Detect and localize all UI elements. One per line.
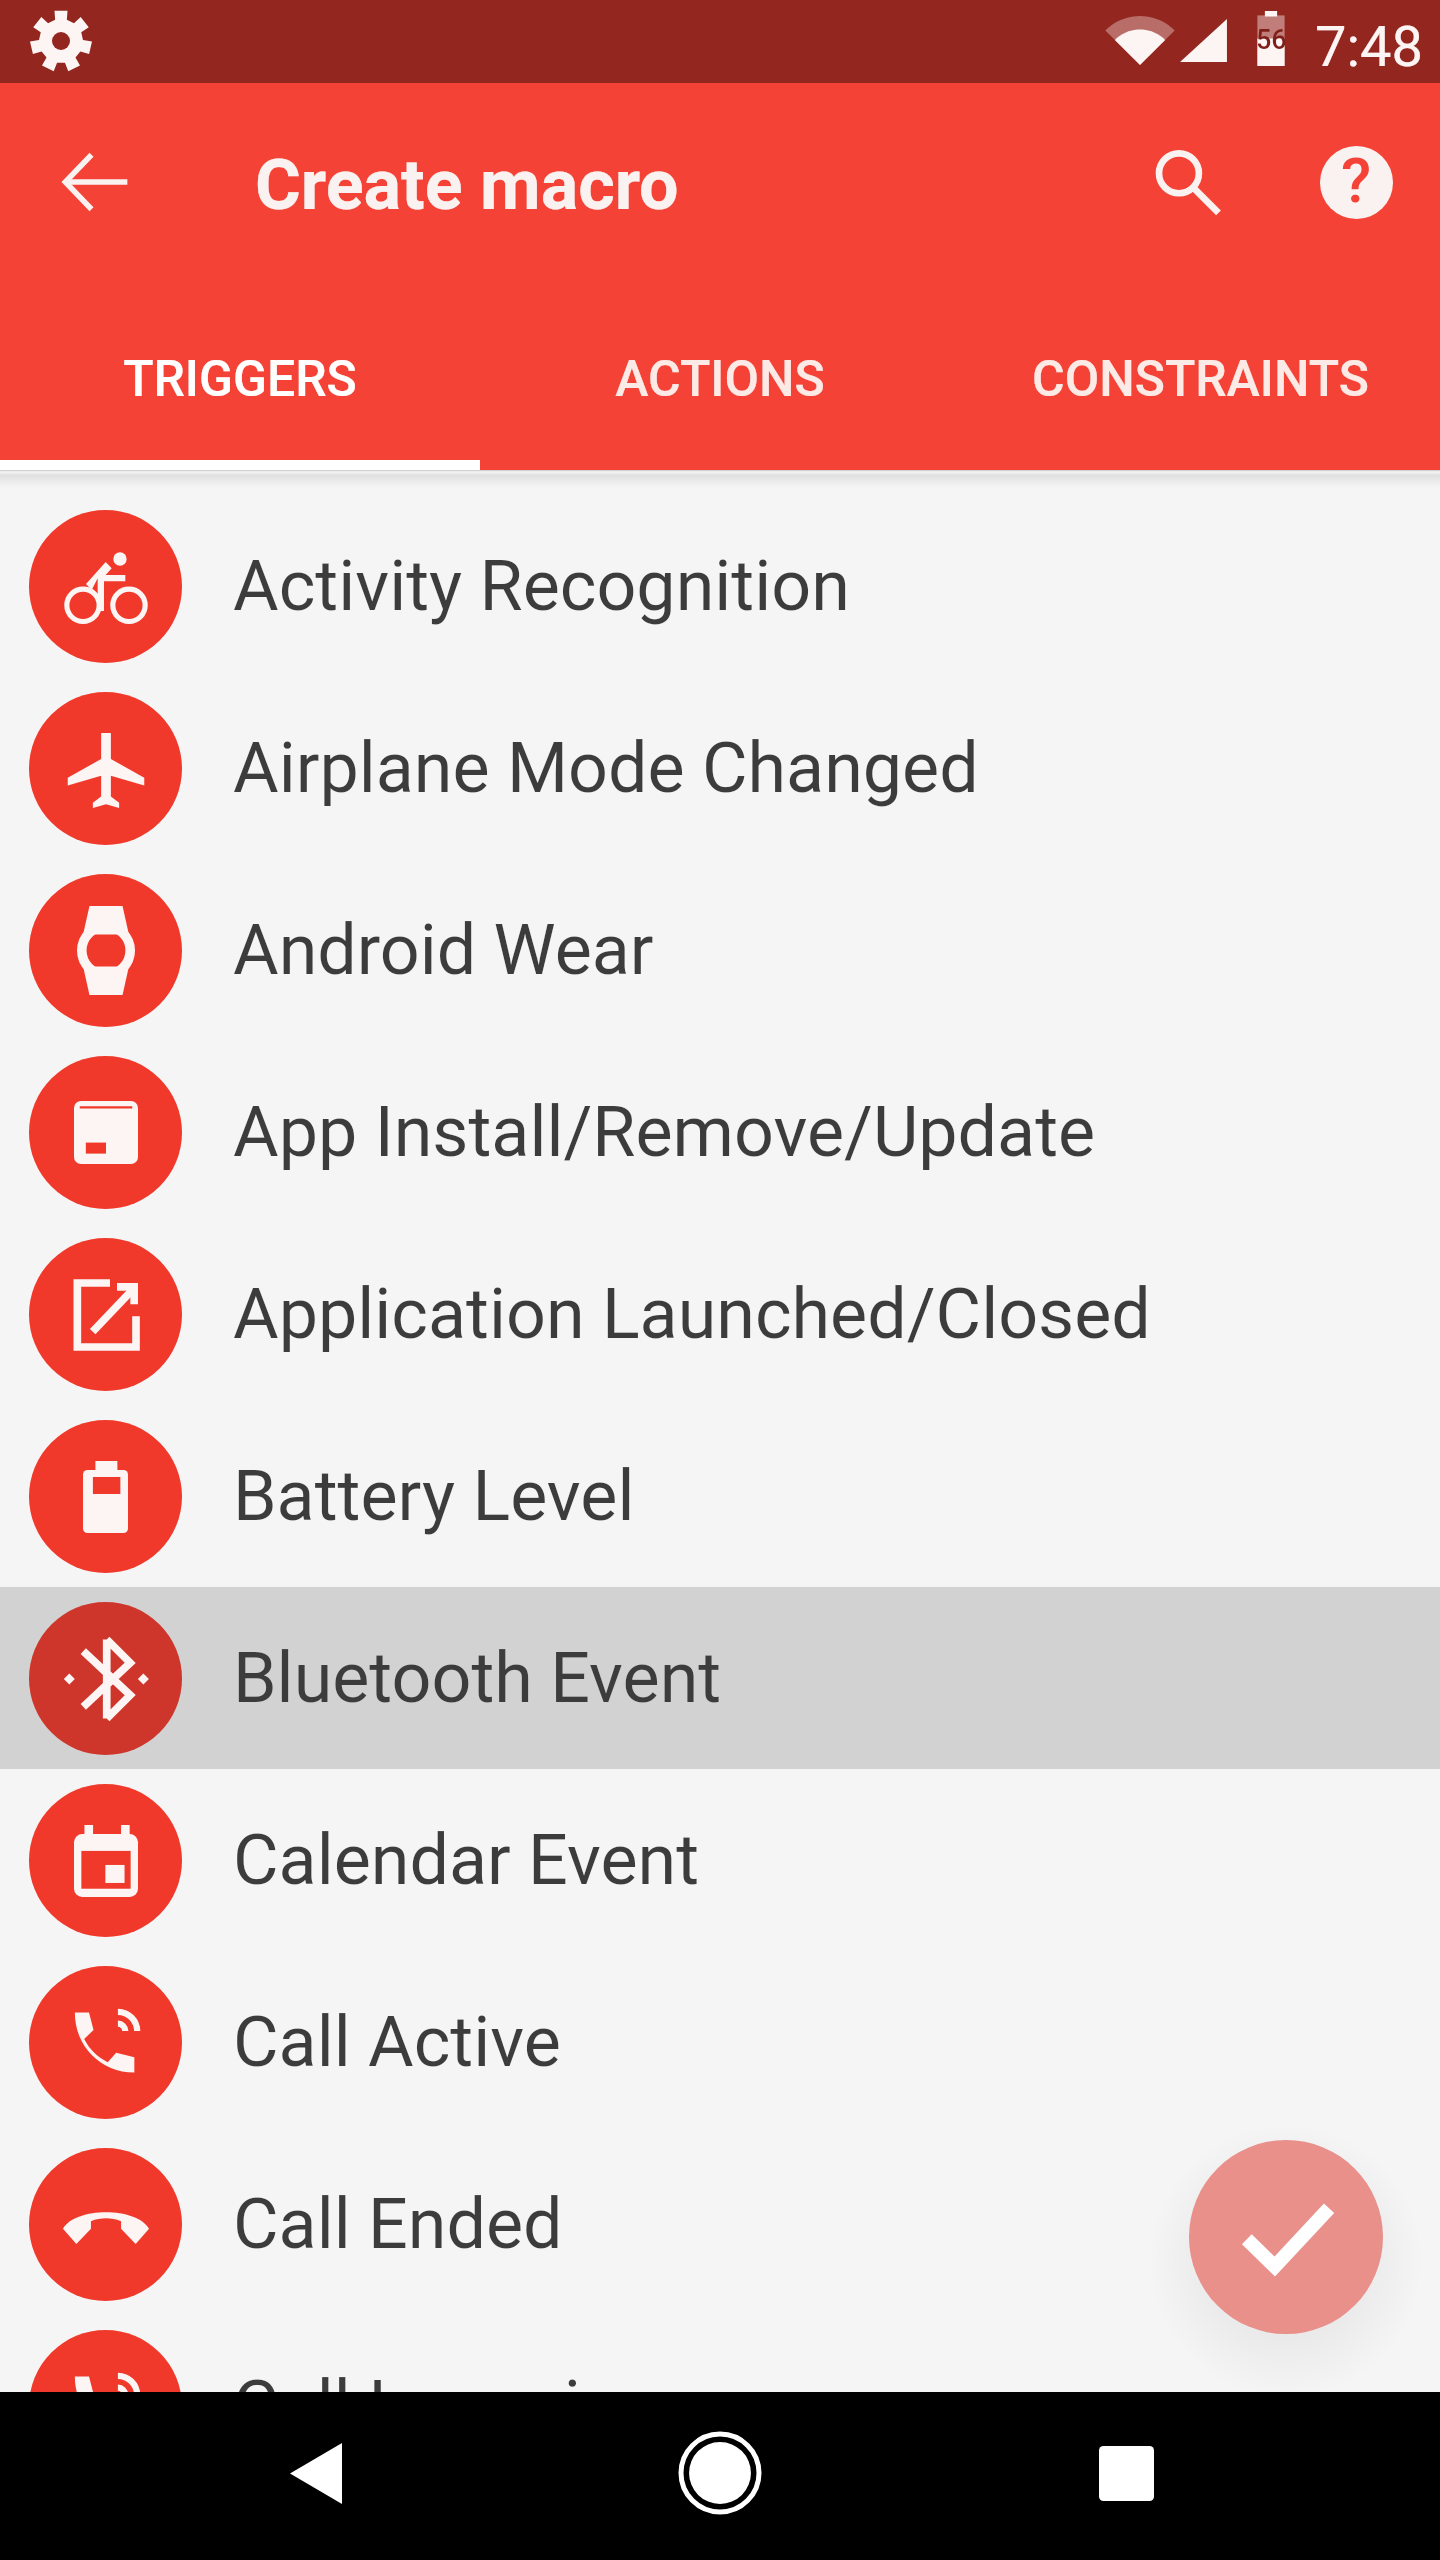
staticText: Airplane Mode Changed (233, 727, 979, 809)
button[interactable]: TRIGGERS (0, 281, 480, 470)
button[interactable]: Call Incoming (0, 2315, 1440, 2497)
button[interactable]: Airplane Mode Changed (0, 677, 1440, 859)
staticText: Call Active (233, 2001, 561, 2083)
button[interactable]: Help (1291, 117, 1421, 247)
staticText: Bluetooth Event (233, 1637, 722, 1719)
staticText: Activity Recognition (233, 545, 850, 627)
staticText: Calendar Event (233, 1819, 700, 1901)
staticText: ? (1341, 146, 1372, 217)
staticText: TRIGGERS (123, 350, 357, 409)
button[interactable]: Activity Recognition (0, 495, 1440, 677)
button[interactable]: App Install/Remove/Update (0, 1041, 1440, 1223)
button[interactable]: Call Ended (0, 2133, 1440, 2315)
staticText: 56 (1256, 24, 1287, 56)
button[interactable]: Bluetooth Event (0, 1587, 1440, 1769)
button[interactable]: Android Wear (0, 859, 1440, 1041)
button[interactable]: Back (256, 2413, 376, 2533)
staticText: Application Launched/Closed (233, 1273, 1151, 1355)
staticText: CONSTRAINTS (1032, 350, 1369, 409)
staticText: Android Wear (233, 909, 654, 991)
staticText: 7:48 (1315, 14, 1423, 80)
button[interactable]: Recents (1066, 2413, 1186, 2533)
button[interactable]: Confirm (1189, 2140, 1383, 2334)
staticText: Call Incoming (233, 2365, 659, 2447)
staticText: App Install/Remove/Update (233, 1091, 1096, 1173)
staticText: Create macro (255, 144, 679, 226)
button[interactable]: ACTIONS (480, 281, 960, 470)
button[interactable]: Home (660, 2413, 780, 2533)
button[interactable]: Search (1122, 117, 1252, 247)
staticText: Battery Level (233, 1455, 635, 1537)
button[interactable]: Calendar Event (0, 1769, 1440, 1951)
button[interactable]: Application Launched/Closed (0, 1223, 1440, 1405)
button[interactable]: Back (31, 117, 161, 247)
staticText: Call Ended (233, 2183, 563, 2265)
button[interactable]: CONSTRAINTS (960, 281, 1440, 470)
staticText: ACTIONS (615, 350, 825, 409)
button[interactable]: Battery Level (0, 1405, 1440, 1587)
button[interactable]: Call Active (0, 1951, 1440, 2133)
